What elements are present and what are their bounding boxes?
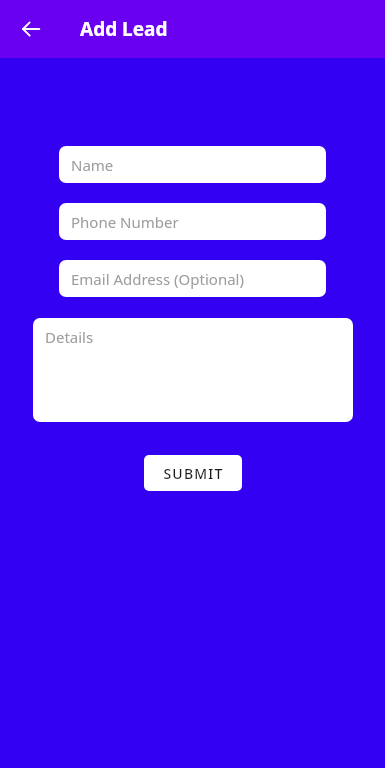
button[interactable]: Name xyxy=(59,146,326,183)
button[interactable]: Email Address (Optional) xyxy=(59,260,326,297)
button[interactable]: Back xyxy=(13,11,49,47)
staticText: Name xyxy=(71,155,114,175)
staticText: Details xyxy=(45,327,94,347)
button[interactable]: Details xyxy=(33,318,353,422)
staticText: Add Lead xyxy=(80,16,168,42)
button[interactable]: Phone Number xyxy=(59,203,326,240)
button[interactable]: SUBMIT xyxy=(144,455,242,491)
staticText: Email Address (Optional) xyxy=(71,269,244,289)
staticText: Phone Number xyxy=(71,212,179,232)
staticText: SUBMIT xyxy=(163,464,224,483)
